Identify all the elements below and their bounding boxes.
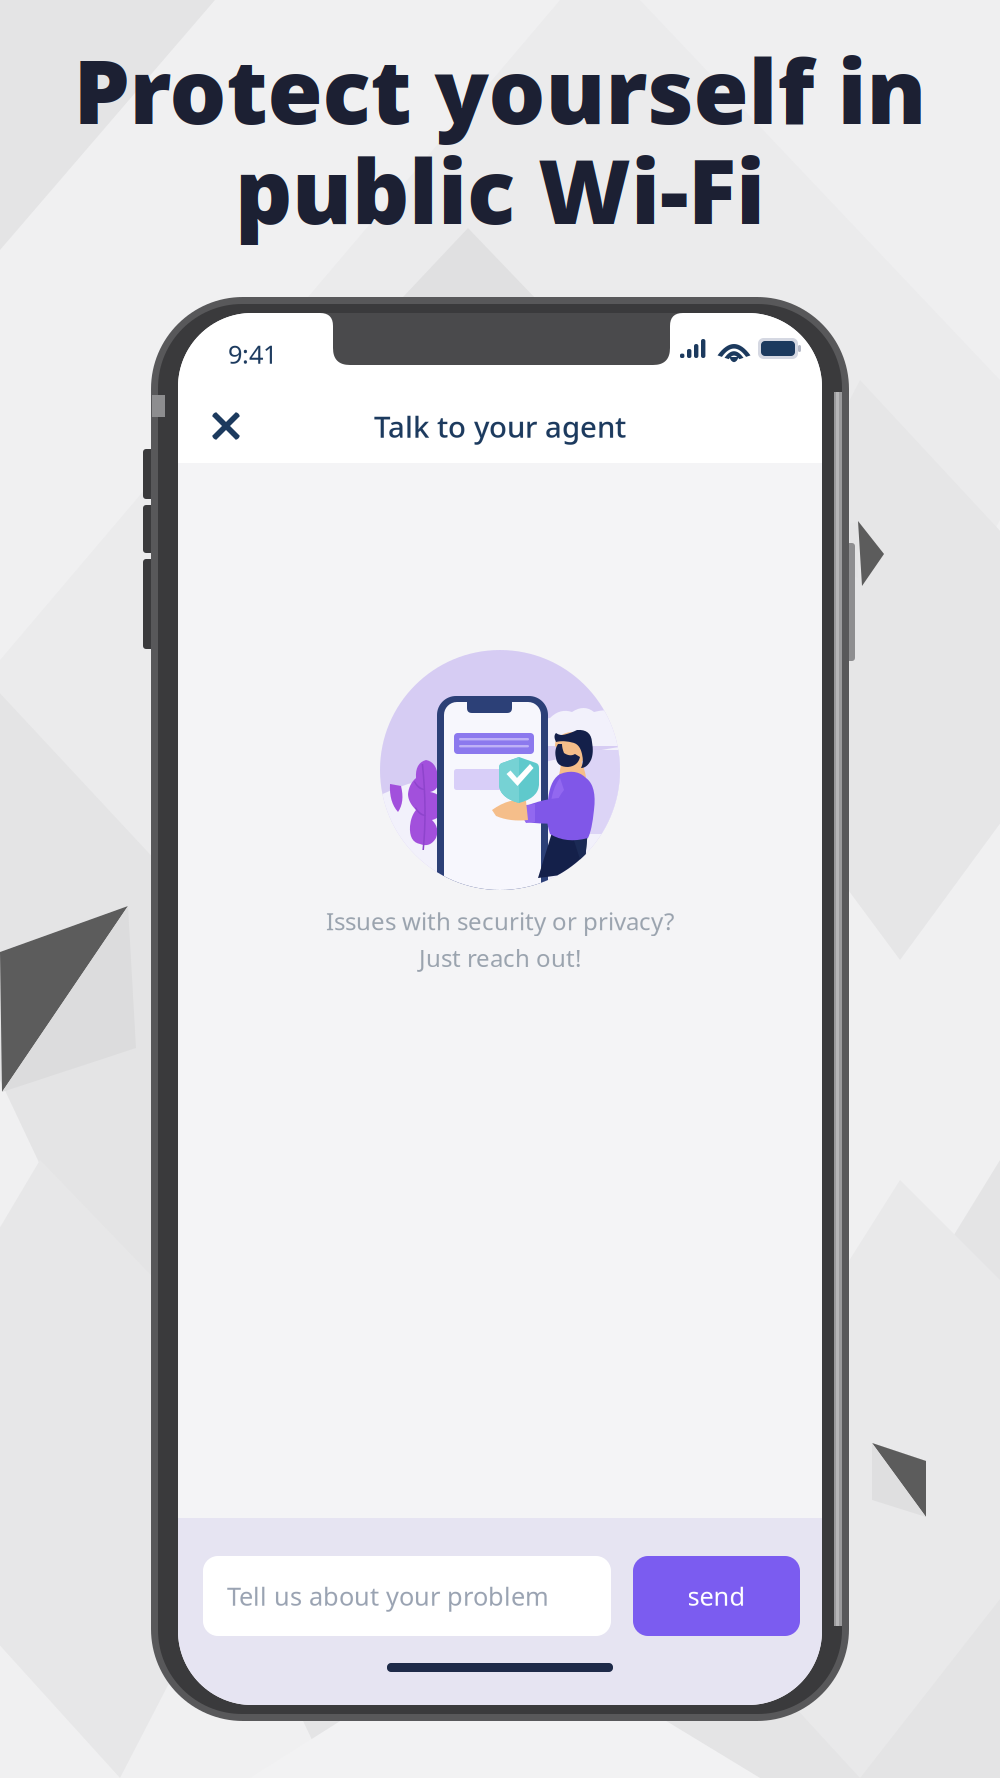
button[interactable]: send: [633, 1556, 800, 1636]
staticText: send: [687, 1579, 745, 1613]
staticText: 9:41: [228, 337, 277, 371]
button[interactable]: Close: [198, 398, 254, 454]
staticText: Tell us about your problem: [227, 1579, 549, 1613]
staticText: Protect yourself in: [73, 30, 926, 149]
button[interactable]: Tell us about your problem: [203, 1556, 611, 1636]
staticText: Talk to your agent: [374, 407, 626, 446]
staticText: Just reach out!: [419, 942, 581, 974]
staticText: public Wi-Fi: [235, 130, 765, 249]
staticText: Issues with security or privacy?: [326, 905, 674, 937]
